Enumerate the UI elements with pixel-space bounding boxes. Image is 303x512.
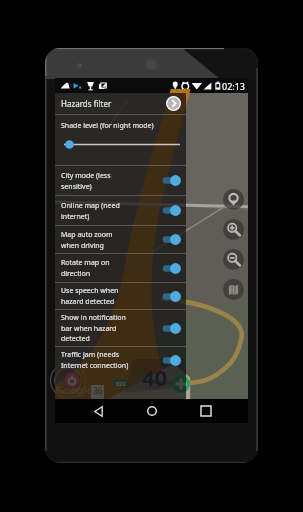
staticText: 40 [142,362,168,392]
button[interactable]: My location [223,189,244,210]
button[interactable]: Shade level (for night mode) [55,115,186,165]
button[interactable] [161,204,181,217]
button[interactable]: Hazards filter [55,93,186,114]
staticText: Shade level (for night mode) [61,121,154,131]
button[interactable] [161,262,181,275]
staticText: Online map (need internet) [61,201,161,221]
staticText: Rotate map on direction [61,258,161,278]
button[interactable]: Map auto zoom when driving [55,226,186,253]
button[interactable] [161,174,181,187]
button[interactable]: Recents [185,399,227,423]
staticText: Show in notification bar when hazard det… [61,313,161,343]
button[interactable] [161,290,181,303]
staticText: City mode (less sensitive) [61,171,161,191]
staticText: km/h [145,383,160,391]
button[interactable]: Back [77,399,119,423]
staticText: Hazards filter [61,98,112,109]
button[interactable]: Use speech when hazard detected [55,283,186,309]
button[interactable]: Traffic jam (needs Internet connection) [55,347,186,373]
staticText: 36 [93,385,103,397]
button[interactable] [161,322,181,335]
button[interactable]: Report hazard [172,375,190,393]
button[interactable]: Online map (need internet) [55,196,186,225]
button[interactable]: City mode (less sensitive) [55,166,186,195]
button[interactable]: Open hazards filter [166,96,181,111]
staticText: E22 [116,380,126,387]
staticText: Google [56,382,94,397]
button[interactable]: Zoom in [223,219,244,240]
button[interactable] [161,354,181,367]
staticText: Traffic jam (needs Internet connection) [61,350,161,370]
button[interactable]: Zoom out [223,249,244,270]
staticText: Use speech when hazard detected [61,286,161,306]
button[interactable]: Show in notification bar when hazard det… [55,310,186,346]
button[interactable]: Rotate map on direction [55,254,186,282]
button[interactable]: Map layers [223,279,244,300]
staticText: 02:13 [222,80,246,92]
staticText: Map auto zoom when driving [61,230,161,250]
button[interactable]: Home [131,399,173,423]
button[interactable] [161,233,181,246]
